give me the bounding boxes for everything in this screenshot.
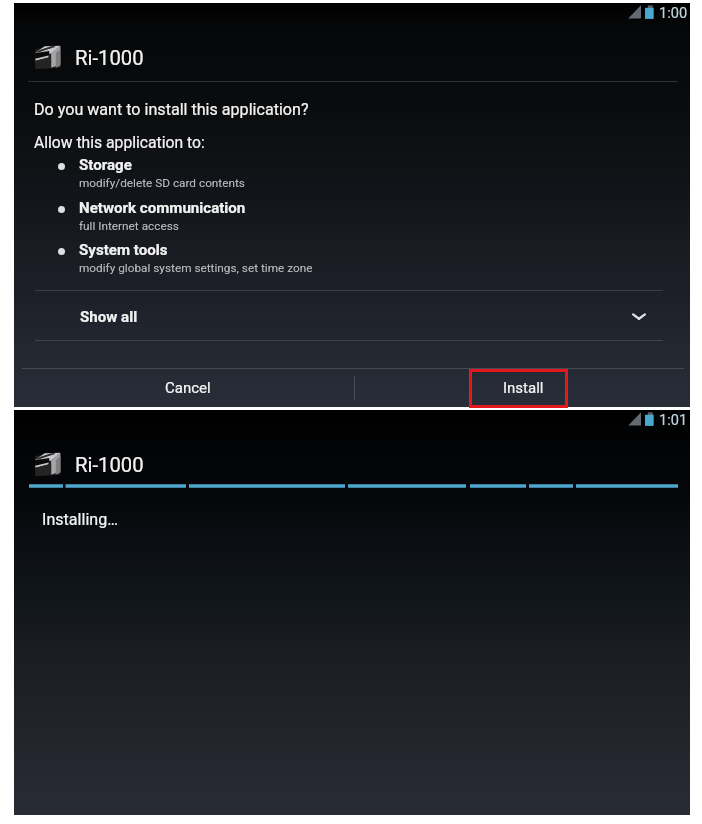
- staticText: Show all: [80, 308, 138, 326]
- staticText: 1:00: [659, 4, 688, 21]
- staticText: Storage: [79, 156, 132, 174]
- staticText: Ri-1000: [75, 46, 144, 70]
- staticText: Installing…: [42, 510, 119, 529]
- staticText: System tools: [79, 241, 168, 259]
- staticText: Cancel: [165, 379, 211, 397]
- staticText: Allow this application to:: [34, 133, 205, 151]
- button[interactable]: Install: [355, 369, 684, 409]
- staticText: modify global system settings, set time …: [79, 261, 313, 275]
- staticText: Do you want to install this application?: [34, 100, 309, 119]
- staticText: Ri-1000: [75, 453, 144, 477]
- staticText: modify/delete SD card contents: [79, 176, 245, 190]
- button[interactable]: Show all: [14, 291, 690, 340]
- staticText: Install: [503, 379, 544, 397]
- staticText: Network communication: [79, 199, 246, 217]
- staticText: full Internet access: [79, 219, 179, 233]
- button[interactable]: Cancel: [22, 369, 354, 409]
- staticText: 1:01: [659, 411, 688, 428]
